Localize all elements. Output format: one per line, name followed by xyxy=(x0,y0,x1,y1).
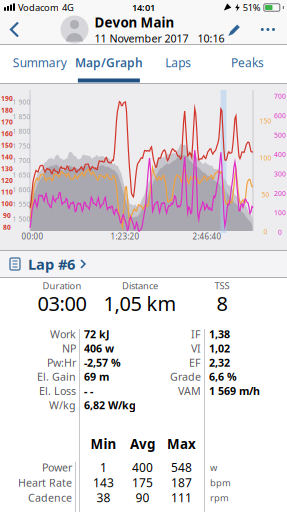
staticText: Grade xyxy=(170,370,201,384)
staticText: Power xyxy=(42,460,72,474)
staticText: 150 xyxy=(1,141,13,150)
staticText: Work xyxy=(50,327,76,341)
staticText: Map/Graph xyxy=(75,54,143,70)
staticText: 11 November 2017 10:16 xyxy=(94,31,224,45)
staticText: 170 xyxy=(1,117,13,126)
staticText: EF xyxy=(189,355,201,370)
staticText: 110 xyxy=(1,188,13,196)
staticText: 1 500 xyxy=(12,214,30,223)
staticText: 2,32 xyxy=(209,355,230,370)
staticText: 100 xyxy=(274,208,286,217)
staticText: Cadence xyxy=(28,491,72,505)
staticText: 80 xyxy=(3,223,11,232)
staticText: VAM xyxy=(178,384,201,398)
staticText: 1 650 xyxy=(12,171,30,179)
staticText: 406 w xyxy=(84,341,114,355)
staticText: NP xyxy=(62,341,76,355)
button[interactable]: Map/Graph xyxy=(74,46,143,87)
staticText: 1 600 xyxy=(12,185,30,194)
staticText: 200 xyxy=(274,189,286,198)
staticText: 1,38 xyxy=(209,327,230,341)
staticText: Summary xyxy=(13,54,67,70)
button[interactable]: Edit xyxy=(222,22,247,36)
staticText: 1,02 xyxy=(209,341,230,355)
staticText: 500 xyxy=(274,131,286,139)
staticText: 8 xyxy=(216,290,227,316)
staticText: 00:00 xyxy=(21,231,43,242)
staticText: 1 900 xyxy=(12,98,30,106)
staticText: 190 xyxy=(1,94,13,103)
staticText: 1 750 xyxy=(12,141,30,150)
staticText: IF xyxy=(191,327,201,341)
staticText: Lap #6 xyxy=(28,254,75,274)
staticText: Vodacom xyxy=(18,1,59,14)
staticText: 548 xyxy=(171,459,192,475)
staticText: 03:00 xyxy=(37,290,86,316)
staticText: Devon Main xyxy=(94,14,174,31)
staticText: 1 850 xyxy=(12,112,30,121)
staticText: 1,05 km xyxy=(103,290,176,316)
staticText: W/kg xyxy=(49,398,76,412)
staticText: 120 xyxy=(1,176,13,185)
staticText: 300 xyxy=(274,169,286,178)
staticText: -2,57 % xyxy=(84,355,121,370)
button[interactable]: More xyxy=(255,20,287,39)
staticText: 1 550 xyxy=(12,200,30,209)
staticText: 111 xyxy=(171,490,192,506)
staticText: 90 xyxy=(3,211,11,220)
staticText: 150 xyxy=(259,117,271,125)
staticText: 1:23:20 xyxy=(110,231,139,242)
staticText: Peaks xyxy=(231,54,264,70)
staticText: 100 xyxy=(259,153,271,162)
staticText: 14:01 xyxy=(132,1,155,14)
staticText: 140 xyxy=(1,152,13,161)
staticText: 50 xyxy=(261,190,269,199)
staticText: Laps xyxy=(165,54,191,70)
staticText: Max xyxy=(167,435,196,453)
staticText: 38 xyxy=(96,490,110,506)
staticText: 400 xyxy=(274,150,286,159)
staticText: Avg xyxy=(130,435,155,453)
staticText: El. Gain xyxy=(37,370,76,384)
staticText: bpm xyxy=(210,476,231,489)
button[interactable]: Summary xyxy=(5,46,74,87)
staticText: 4G xyxy=(62,1,74,14)
staticText: 1 700 xyxy=(12,156,30,165)
staticText: Pw:Hr xyxy=(47,355,76,370)
staticText: 0 xyxy=(263,227,267,236)
staticText: El. Loss xyxy=(39,384,76,398)
staticText: rpm xyxy=(210,491,229,504)
staticText: w xyxy=(210,461,217,473)
staticText: 90 xyxy=(135,490,149,506)
staticText: 100 xyxy=(1,199,13,208)
button[interactable]: Lap #6 xyxy=(0,251,287,277)
staticText: 1 569 m/h xyxy=(209,384,260,398)
staticText: 175 xyxy=(132,474,153,490)
staticText: 180 xyxy=(1,106,13,115)
button[interactable]: Laps xyxy=(143,46,213,87)
staticText: Duration xyxy=(42,279,81,292)
staticText: 1 xyxy=(100,459,107,475)
staticText: - - xyxy=(84,384,93,398)
staticText: 187 xyxy=(171,474,192,490)
staticText: 6,82 W/kg xyxy=(84,398,136,412)
staticText: 2:46:40 xyxy=(192,231,221,242)
staticText: 600 xyxy=(274,111,286,120)
staticText: Distance xyxy=(122,279,158,292)
staticText: 700 xyxy=(274,92,286,101)
staticText: 160 xyxy=(1,129,13,138)
staticText: Heart Rate xyxy=(18,475,72,490)
staticText: 400 xyxy=(132,459,153,475)
staticText: 130 xyxy=(1,164,13,173)
staticText: 72 kJ xyxy=(84,327,110,341)
staticText: Min xyxy=(90,435,116,453)
staticText: 51% xyxy=(243,1,261,14)
staticText: TSS xyxy=(214,279,229,292)
staticText: 143 xyxy=(93,474,114,490)
button[interactable]: Back xyxy=(0,15,20,44)
button[interactable]: Peaks xyxy=(213,46,282,87)
staticText: VI xyxy=(191,341,201,355)
staticText: 6,6 % xyxy=(209,370,237,384)
staticText: 0 xyxy=(278,228,282,237)
staticText: 69 m xyxy=(84,370,109,384)
